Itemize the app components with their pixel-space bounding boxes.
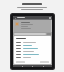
button[interactable] [14, 41, 51, 44]
button[interactable]: Nav 1 [21, 65, 24, 67]
button[interactable] [14, 56, 51, 59]
button[interactable]: Menu [14, 17, 16, 19]
button[interactable] [14, 50, 51, 53]
button[interactable] [14, 47, 51, 50]
button[interactable]: Nav 2 [31, 65, 34, 67]
button[interactable] [14, 53, 51, 56]
button[interactable]: Nav 3 [42, 65, 45, 67]
button[interactable] [14, 44, 51, 47]
